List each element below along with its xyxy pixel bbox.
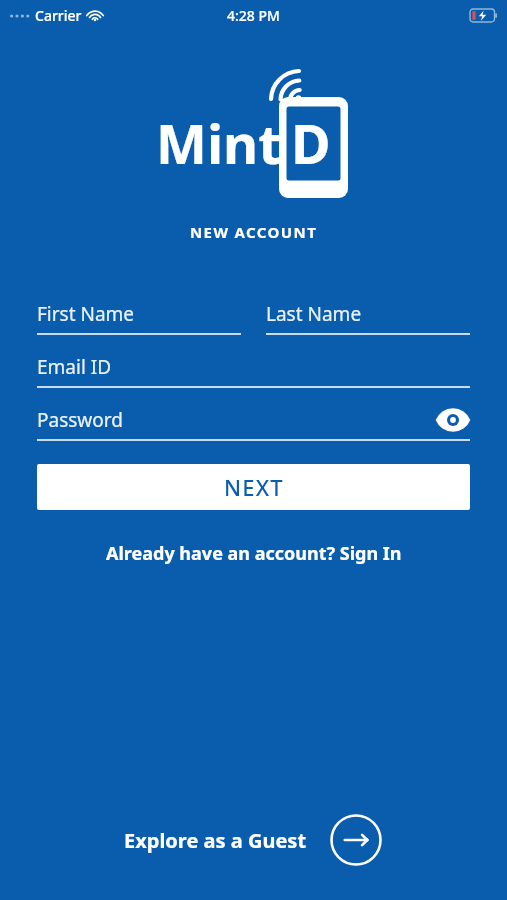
button[interactable]: NEXT	[37, 464, 470, 510]
staticText: Explore as a Guest	[124, 827, 307, 854]
staticText: 4:28 PM	[227, 6, 280, 25]
staticText: Password	[37, 407, 123, 433]
button[interactable]: Last Name	[266, 299, 470, 335]
staticText: First Name	[37, 301, 135, 327]
button[interactable]: First Name	[37, 299, 241, 335]
button[interactable]: Show password	[436, 405, 470, 435]
staticText: NEXT	[224, 472, 284, 502]
staticText: D	[291, 106, 331, 180]
button[interactable]: Email ID	[37, 352, 470, 388]
button[interactable]: Already have an account? Sign In	[98, 537, 410, 570]
button[interactable]: Explore as a Guest	[0, 813, 507, 867]
staticText: Mint	[156, 106, 282, 180]
staticText: Already have an account? Sign In	[106, 541, 402, 566]
staticText: Carrier	[35, 6, 82, 25]
other: Continue as guest	[329, 813, 383, 867]
staticText: NEW ACCOUNT	[190, 222, 318, 242]
button[interactable]: Password	[37, 405, 470, 441]
staticText: Last Name	[266, 301, 362, 327]
staticText: Email ID	[37, 354, 112, 380]
